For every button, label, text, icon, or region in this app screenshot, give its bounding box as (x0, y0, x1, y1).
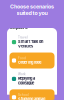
staticText: Replying a colleague (18, 76, 35, 85)
staticText: Ordering food (18, 60, 41, 65)
staticText: Choose scenarios (10, 3, 54, 10)
staticText: Travel (18, 36, 28, 39)
staticText: Smart Talk on Vehicles (18, 39, 43, 49)
staticText: Studying abroad (18, 97, 45, 100)
staticText: suited to you (16, 10, 47, 16)
button[interactable]: School (9, 89, 54, 100)
staticText: Work (18, 72, 26, 76)
button[interactable]: Food (9, 52, 54, 68)
staticText: Food (18, 56, 26, 60)
staticText: School (18, 93, 29, 97)
button[interactable]: Work (9, 71, 54, 87)
staticText: Explore (10, 24, 28, 30)
button[interactable]: Travel (9, 34, 54, 50)
